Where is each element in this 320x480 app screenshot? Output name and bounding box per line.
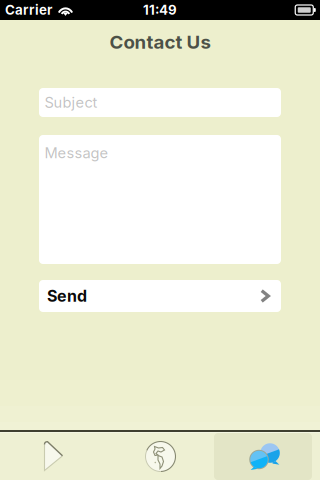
staticText: Subject — [44, 94, 97, 111]
button[interactable]: Message — [39, 135, 281, 264]
staticText: Contact Us — [109, 31, 210, 53]
staticText: Send — [47, 286, 87, 306]
button[interactable]: Send — [39, 280, 281, 312]
staticText: Carrier — [5, 2, 52, 18]
button[interactable]: Subject — [39, 88, 281, 117]
staticText: Message — [44, 144, 108, 162]
button[interactable]: Messages — [214, 433, 320, 480]
button[interactable]: Play — [0, 433, 107, 480]
staticText: 11:49 — [143, 2, 177, 18]
button[interactable]: Browse — [107, 433, 214, 480]
